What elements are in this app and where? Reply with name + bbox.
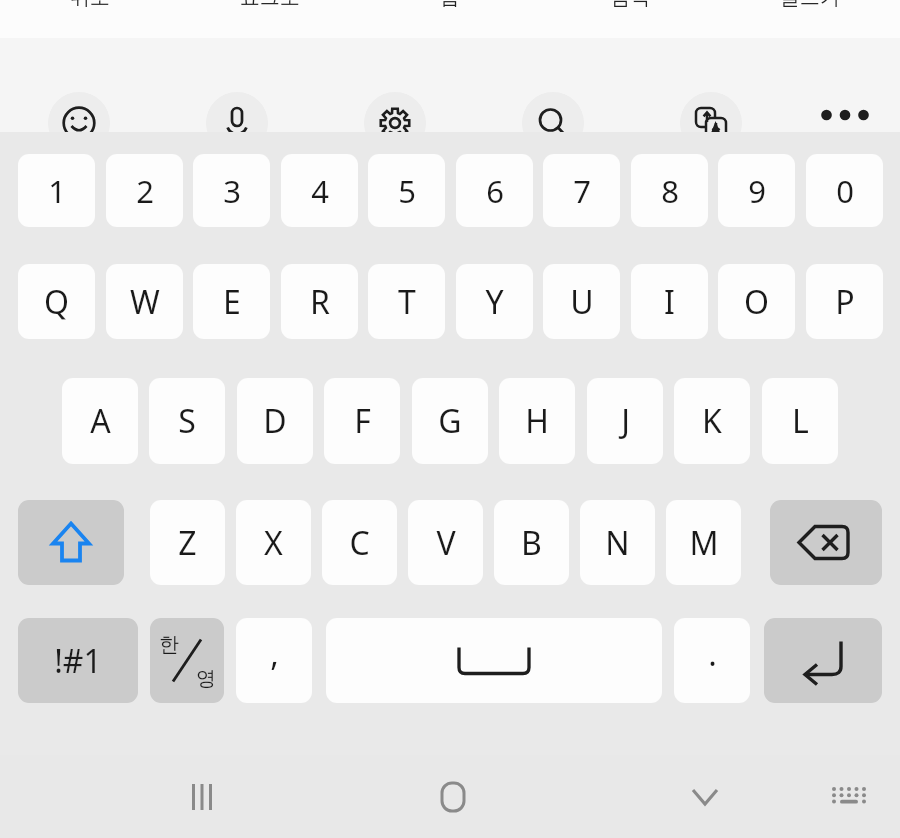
- staticText: Q: [44, 280, 69, 324]
- button[interactable]: H: [499, 378, 575, 464]
- staticText: B: [521, 521, 542, 565]
- button[interactable]: T: [368, 264, 445, 339]
- button[interactable]: Translate: [680, 92, 742, 154]
- staticText: R: [310, 280, 330, 324]
- staticText: O: [744, 280, 769, 324]
- staticText: 글쓰기: [780, 0, 840, 10]
- button[interactable]: 5: [368, 154, 445, 227]
- button[interactable]: Shift: [18, 500, 124, 585]
- button[interactable]: 4: [281, 154, 358, 227]
- button[interactable]: A: [62, 378, 138, 464]
- button[interactable]: Space: [326, 618, 662, 703]
- staticText: G: [438, 399, 462, 443]
- staticText: J: [621, 399, 630, 443]
- button[interactable]: !#1: [18, 618, 138, 703]
- button[interactable]: S: [149, 378, 225, 464]
- button[interactable]: Emoji: [48, 92, 110, 154]
- button[interactable]: Home: [416, 768, 490, 825]
- button[interactable]: I: [631, 264, 708, 339]
- staticText: H: [525, 399, 549, 443]
- button[interactable]: 1: [18, 154, 95, 227]
- staticText: M: [689, 521, 719, 565]
- staticText: 위로: [70, 0, 110, 10]
- staticText: Y: [485, 280, 504, 324]
- button[interactable]: L: [762, 378, 838, 464]
- staticText: E: [223, 280, 241, 324]
- button[interactable]: Enter: [764, 618, 882, 703]
- button[interactable]: 8: [631, 154, 708, 227]
- staticText: 검색: [610, 0, 650, 10]
- staticText: K: [702, 399, 722, 443]
- staticText: X: [264, 521, 283, 565]
- staticText: S: [178, 399, 196, 443]
- button[interactable]: N: [580, 500, 655, 585]
- button[interactable]: G: [412, 378, 488, 464]
- button[interactable]: 6: [456, 154, 533, 227]
- button[interactable]: M: [666, 500, 741, 585]
- staticText: 5: [398, 170, 416, 212]
- button[interactable]: K: [674, 378, 750, 464]
- staticText: A: [90, 399, 111, 443]
- button[interactable]: 0: [806, 154, 883, 227]
- button[interactable]: Backspace: [770, 500, 882, 585]
- button[interactable]: B: [494, 500, 569, 585]
- staticText: V: [436, 521, 456, 565]
- staticText: W: [130, 280, 160, 324]
- button[interactable]: R: [281, 264, 358, 339]
- button[interactable]: 홈: [360, 0, 540, 38]
- button[interactable]: V: [408, 500, 483, 585]
- button[interactable]: Recents: [165, 768, 239, 825]
- button[interactable]: Y: [456, 264, 533, 339]
- button[interactable]: Switch keyboard: [812, 768, 886, 825]
- button[interactable]: Hide keyboard: [668, 768, 742, 825]
- button[interactable]: 7: [543, 154, 620, 227]
- button[interactable]: 검색: [540, 0, 720, 38]
- staticText: 0: [836, 170, 854, 212]
- staticText: 영: [196, 666, 216, 691]
- button[interactable]: P: [806, 264, 883, 339]
- staticText: N: [605, 521, 630, 565]
- staticText: !#1: [54, 639, 102, 683]
- button[interactable]: 3: [193, 154, 270, 227]
- button[interactable]: Settings: [364, 92, 426, 154]
- button[interactable]: X: [236, 500, 311, 585]
- staticText: D: [263, 399, 287, 443]
- button[interactable]: F: [324, 378, 400, 464]
- button[interactable]: 표그포: [180, 0, 360, 38]
- button[interactable]: 2: [106, 154, 183, 227]
- staticText: 8: [661, 170, 679, 212]
- staticText: C: [349, 521, 370, 565]
- staticText: 홈: [440, 0, 460, 10]
- button[interactable]: U: [543, 264, 620, 339]
- button[interactable]: 위로: [0, 0, 180, 38]
- button[interactable]: E: [193, 264, 270, 339]
- staticText: Z: [178, 521, 197, 565]
- button[interactable]: Z: [150, 500, 225, 585]
- button[interactable]: .: [674, 618, 750, 703]
- staticText: 7: [573, 170, 591, 212]
- button[interactable]: O: [718, 264, 795, 339]
- button[interactable]: ,: [236, 618, 312, 703]
- staticText: 한: [159, 632, 179, 657]
- button[interactable]: 글쓰기: [720, 0, 900, 38]
- button[interactable]: Voice input: [206, 92, 268, 154]
- button[interactable]: More options: [808, 95, 882, 135]
- staticText: .: [708, 632, 717, 676]
- staticText: 4: [311, 170, 329, 212]
- button[interactable]: Q: [18, 264, 95, 339]
- staticText: ,: [270, 632, 279, 676]
- staticText: L: [792, 399, 809, 443]
- button[interactable]: Search: [522, 92, 584, 154]
- button[interactable]: J: [587, 378, 663, 464]
- button[interactable]: D: [237, 378, 313, 464]
- staticText: I: [664, 280, 675, 324]
- button[interactable]: W: [106, 264, 183, 339]
- staticText: 1: [48, 170, 66, 212]
- button[interactable]: Korean English toggle: [150, 618, 224, 703]
- button[interactable]: C: [322, 500, 397, 585]
- staticText: F: [354, 399, 371, 443]
- staticText: 6: [486, 170, 504, 212]
- staticText: U: [570, 280, 594, 324]
- staticText: 표그포: [240, 0, 300, 10]
- button[interactable]: 9: [718, 154, 795, 227]
